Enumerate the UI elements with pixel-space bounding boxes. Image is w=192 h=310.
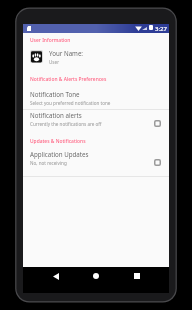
button[interactable]: Notification Tone — [23, 90, 169, 106]
staticText: Select you preferred notification tone — [30, 100, 111, 106]
button[interactable]: Home — [88, 268, 104, 284]
staticText: Notification alerts — [30, 111, 82, 119]
staticText: Notification Tone — [30, 90, 80, 98]
staticText: Application Updates — [30, 150, 89, 158]
staticText: No, not receiving — [30, 160, 67, 166]
button[interactable]: Notification alerts — [23, 111, 169, 127]
button[interactable]: Back — [48, 268, 64, 284]
staticText: 3:27 — [155, 25, 167, 33]
staticText: Currently the notifications are off — [30, 121, 102, 127]
staticText: User Information — [30, 37, 71, 44]
button[interactable]: Your Name: — [23, 49, 169, 64]
button[interactable]: App icon — [27, 26, 31, 31]
staticText: Updates & Notifications — [30, 138, 86, 145]
staticText: Your Name: — [49, 49, 84, 57]
button[interactable]: Application Updates — [153, 158, 161, 166]
staticText: User — [49, 59, 60, 64]
button[interactable]: Application Updates — [23, 150, 169, 166]
button[interactable]: Notification alerts — [153, 119, 161, 127]
staticText: Notification & Alerts Preferences — [30, 76, 107, 83]
button[interactable]: Recent apps — [129, 268, 145, 284]
